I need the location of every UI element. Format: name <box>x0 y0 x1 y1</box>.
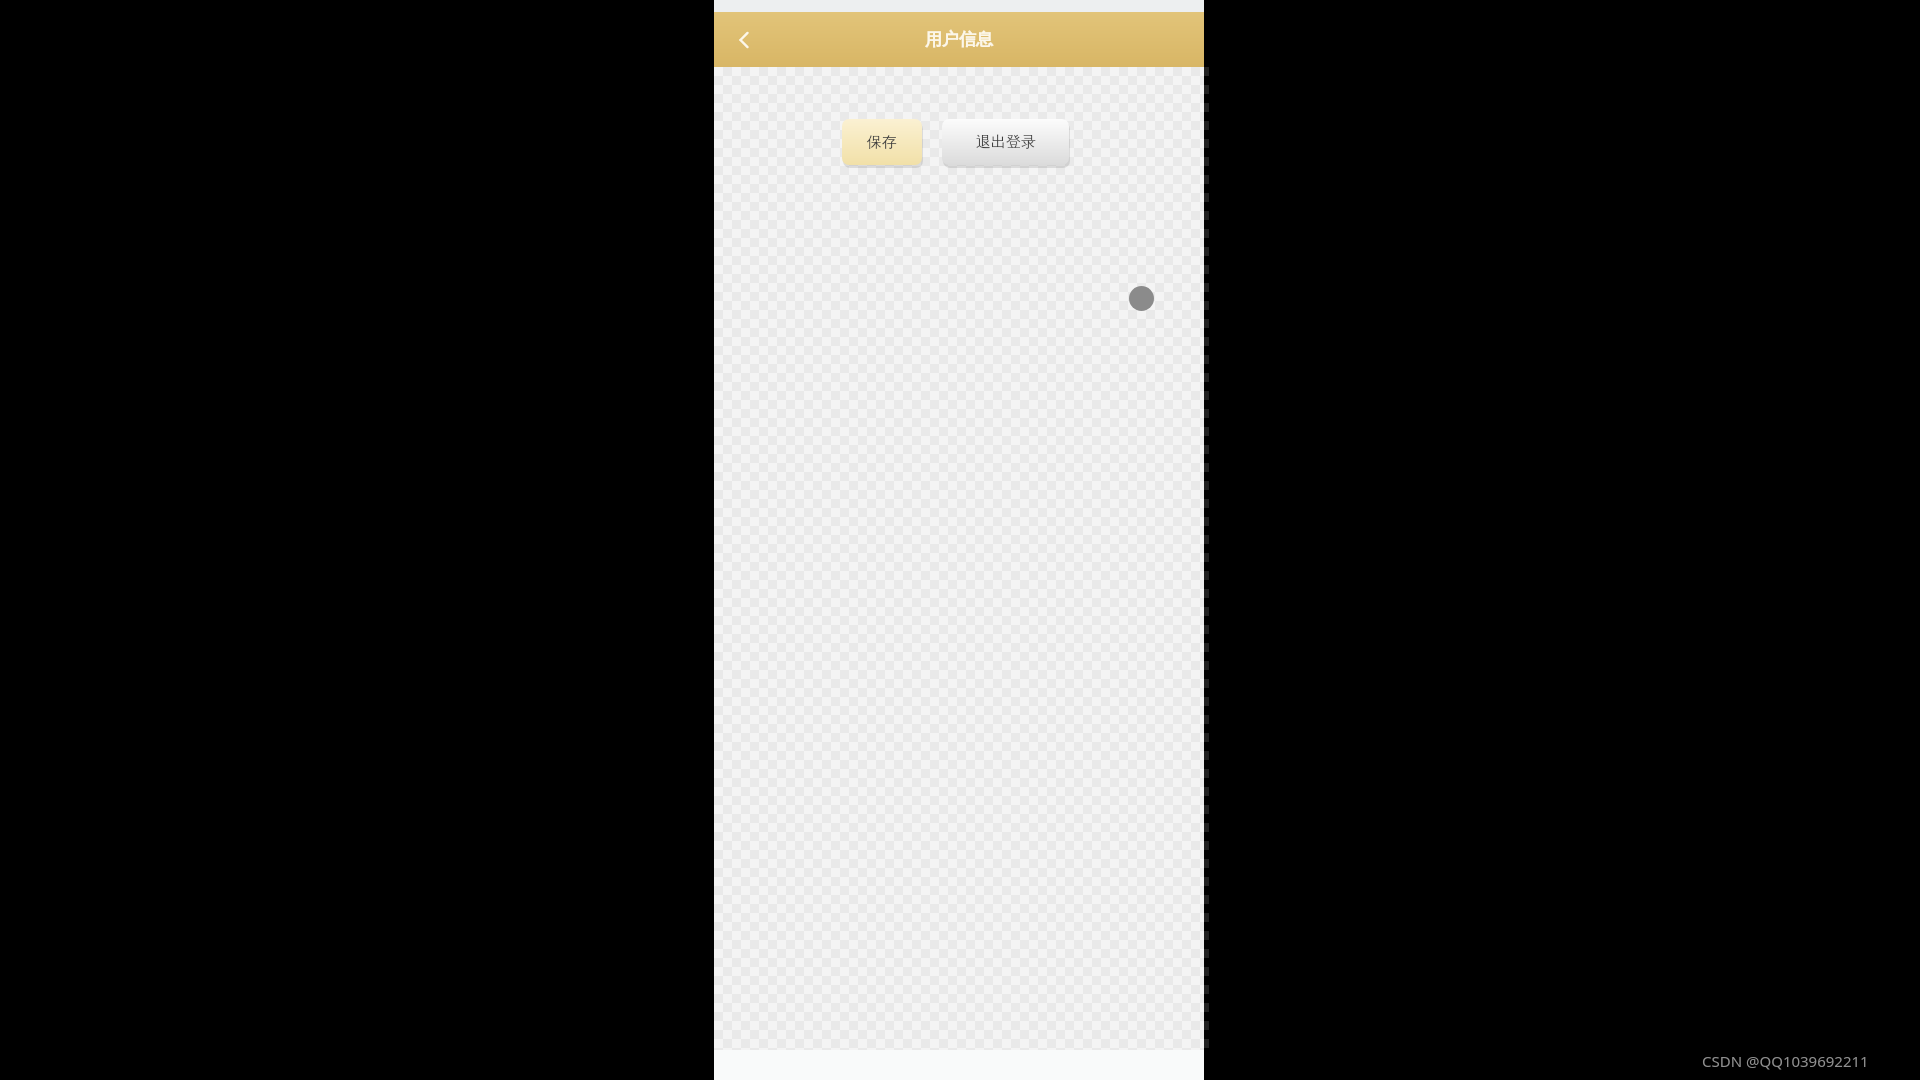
staticText: 保存 <box>867 133 897 152</box>
staticText: 退出登录 <box>976 133 1036 152</box>
button[interactable]: Back <box>722 18 766 62</box>
staticText: CSDN @QQ1039692211 <box>1702 1051 1869 1071</box>
staticText: 用户信息 <box>925 29 993 50</box>
button[interactable]: 保存 <box>842 119 922 165</box>
button[interactable]: 退出登录 <box>942 119 1069 165</box>
